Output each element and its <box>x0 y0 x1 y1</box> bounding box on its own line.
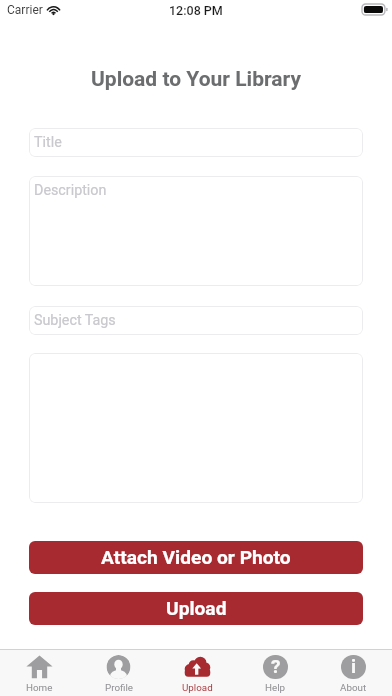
button[interactable]: Subject Tags <box>29 306 363 335</box>
staticText: Subject Tags <box>34 312 116 329</box>
button[interactable]: Title <box>29 128 363 157</box>
button[interactable]: Upload <box>29 592 363 625</box>
staticText: Attach Video or Photo <box>101 546 291 569</box>
staticText: ? <box>271 655 281 677</box>
button[interactable]: Attach Video or Photo <box>29 541 363 574</box>
other: Battery full <box>362 4 388 15</box>
staticText: 12:08 PM <box>169 3 223 18</box>
staticText: Upload <box>166 597 227 620</box>
button[interactable]: i <box>314 649 392 696</box>
staticText: About <box>340 682 367 693</box>
button[interactable]: Upload <box>158 649 236 696</box>
staticText: Description <box>34 182 107 199</box>
staticText: i <box>351 655 357 677</box>
button[interactable]: Description <box>29 176 363 286</box>
staticText: Title <box>34 134 62 151</box>
button[interactable]: Home <box>0 649 79 696</box>
button[interactable]: Profile <box>79 649 158 696</box>
other: Wi-Fi signal <box>47 5 60 15</box>
staticText: Help <box>265 682 286 693</box>
staticText: Upload <box>182 682 213 693</box>
staticText: Carrier <box>7 3 43 17</box>
staticText: Profile <box>105 682 133 693</box>
button[interactable]: ? <box>236 649 314 696</box>
staticText: Upload to Your Library <box>0 67 392 92</box>
staticText: Home <box>26 682 53 693</box>
